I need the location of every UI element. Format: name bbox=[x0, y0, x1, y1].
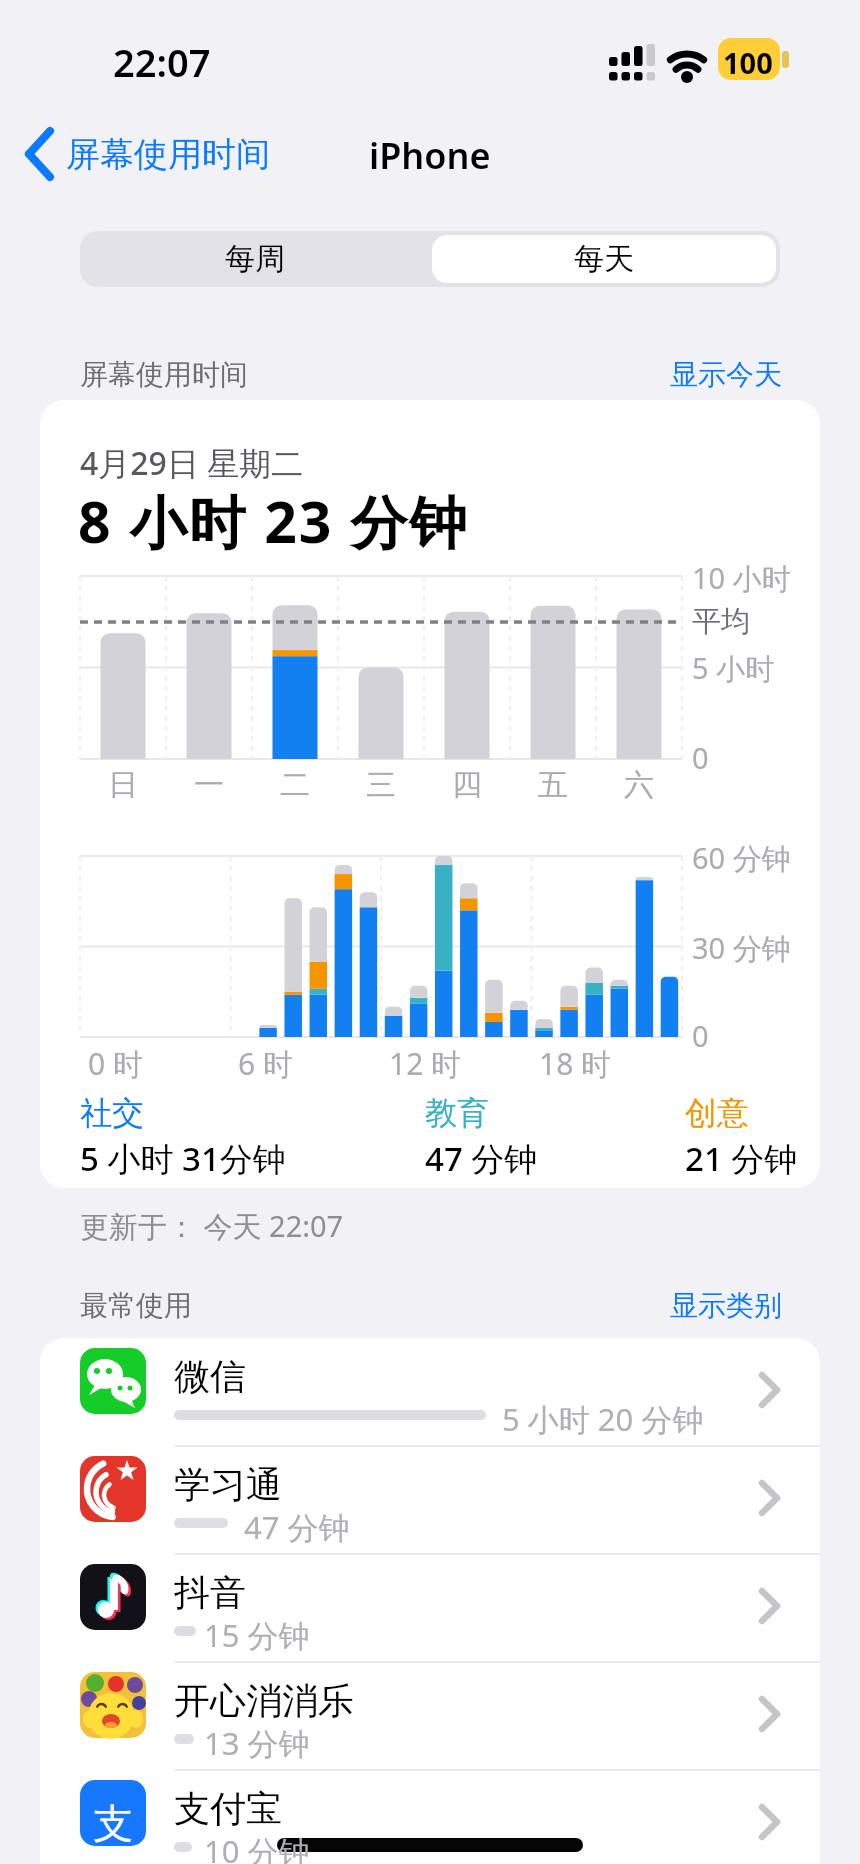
staticText: 10 分钟 bbox=[204, 1830, 310, 1864]
staticText: 12 时 bbox=[389, 1043, 462, 1084]
staticText: 最常使用 bbox=[80, 1288, 192, 1323]
button[interactable]: 每天 bbox=[432, 235, 776, 283]
staticText: 创意 bbox=[685, 1093, 749, 1133]
staticText: 四 bbox=[452, 766, 482, 804]
button[interactable] bbox=[40, 1446, 820, 1554]
staticText: 60 分钟 bbox=[692, 838, 791, 878]
staticText: 五 bbox=[538, 766, 568, 804]
button[interactable] bbox=[20, 125, 280, 185]
staticText: 每周 bbox=[225, 240, 285, 278]
staticText: 六 bbox=[624, 766, 654, 804]
button[interactable] bbox=[650, 345, 800, 395]
staticText: 支付宝 bbox=[174, 1786, 282, 1831]
staticText: 三 bbox=[366, 766, 396, 804]
staticText: 21 分钟 bbox=[685, 1136, 798, 1181]
button[interactable] bbox=[40, 1770, 820, 1864]
staticText: 微信 bbox=[174, 1354, 246, 1399]
staticText: 47 分钟 bbox=[244, 1506, 350, 1548]
button[interactable] bbox=[40, 1338, 820, 1446]
staticText: 5 小时 bbox=[692, 648, 775, 688]
staticText: 0 时 bbox=[88, 1043, 143, 1084]
button[interactable] bbox=[40, 1554, 820, 1662]
staticText: 显示类别 bbox=[670, 1288, 782, 1323]
staticText: 社交 bbox=[80, 1093, 144, 1133]
staticText: 教育 bbox=[425, 1093, 489, 1133]
staticText: 二 bbox=[280, 766, 310, 804]
staticText: 5 小时 31分钟 bbox=[80, 1136, 286, 1181]
staticText: 更新于： 今天 22:07 bbox=[80, 1206, 344, 1246]
staticText: 0 bbox=[692, 738, 709, 777]
staticText: 10 小时 bbox=[692, 558, 791, 598]
staticText: 13 分钟 bbox=[204, 1722, 310, 1764]
button[interactable] bbox=[40, 1662, 820, 1770]
staticText: 8 小时 23 分钟 bbox=[78, 482, 469, 560]
staticText: 4月29日 星期二 bbox=[80, 441, 304, 485]
staticText: 学习通 bbox=[174, 1462, 282, 1507]
button[interactable]: 每周 bbox=[80, 231, 430, 287]
staticText: iPhone bbox=[369, 131, 491, 180]
staticText: 开心消消乐 bbox=[174, 1678, 354, 1723]
staticText: 屏幕使用时间 bbox=[80, 357, 248, 392]
staticText: 显示今天 bbox=[670, 357, 782, 392]
staticText: 抖音 bbox=[174, 1570, 246, 1615]
staticText: 平均 bbox=[692, 603, 750, 640]
staticText: 22:07 bbox=[113, 36, 211, 88]
staticText: 30 分钟 bbox=[692, 928, 791, 968]
staticText: 日 bbox=[108, 766, 138, 804]
staticText: 每天 bbox=[574, 240, 634, 278]
staticText: 47 分钟 bbox=[425, 1136, 538, 1181]
staticText: 6 时 bbox=[238, 1043, 293, 1084]
button[interactable] bbox=[650, 1276, 800, 1326]
staticText: 15 分钟 bbox=[204, 1614, 310, 1656]
staticText: 0 bbox=[692, 1016, 709, 1055]
staticText: 屏幕使用时间 bbox=[66, 133, 270, 176]
staticText: 100 bbox=[723, 43, 773, 82]
staticText: 支 bbox=[93, 1798, 133, 1848]
staticText: 一 bbox=[194, 766, 224, 804]
staticText: 5 小时 20 分钟 bbox=[502, 1398, 704, 1440]
staticText: 18 时 bbox=[539, 1043, 612, 1084]
